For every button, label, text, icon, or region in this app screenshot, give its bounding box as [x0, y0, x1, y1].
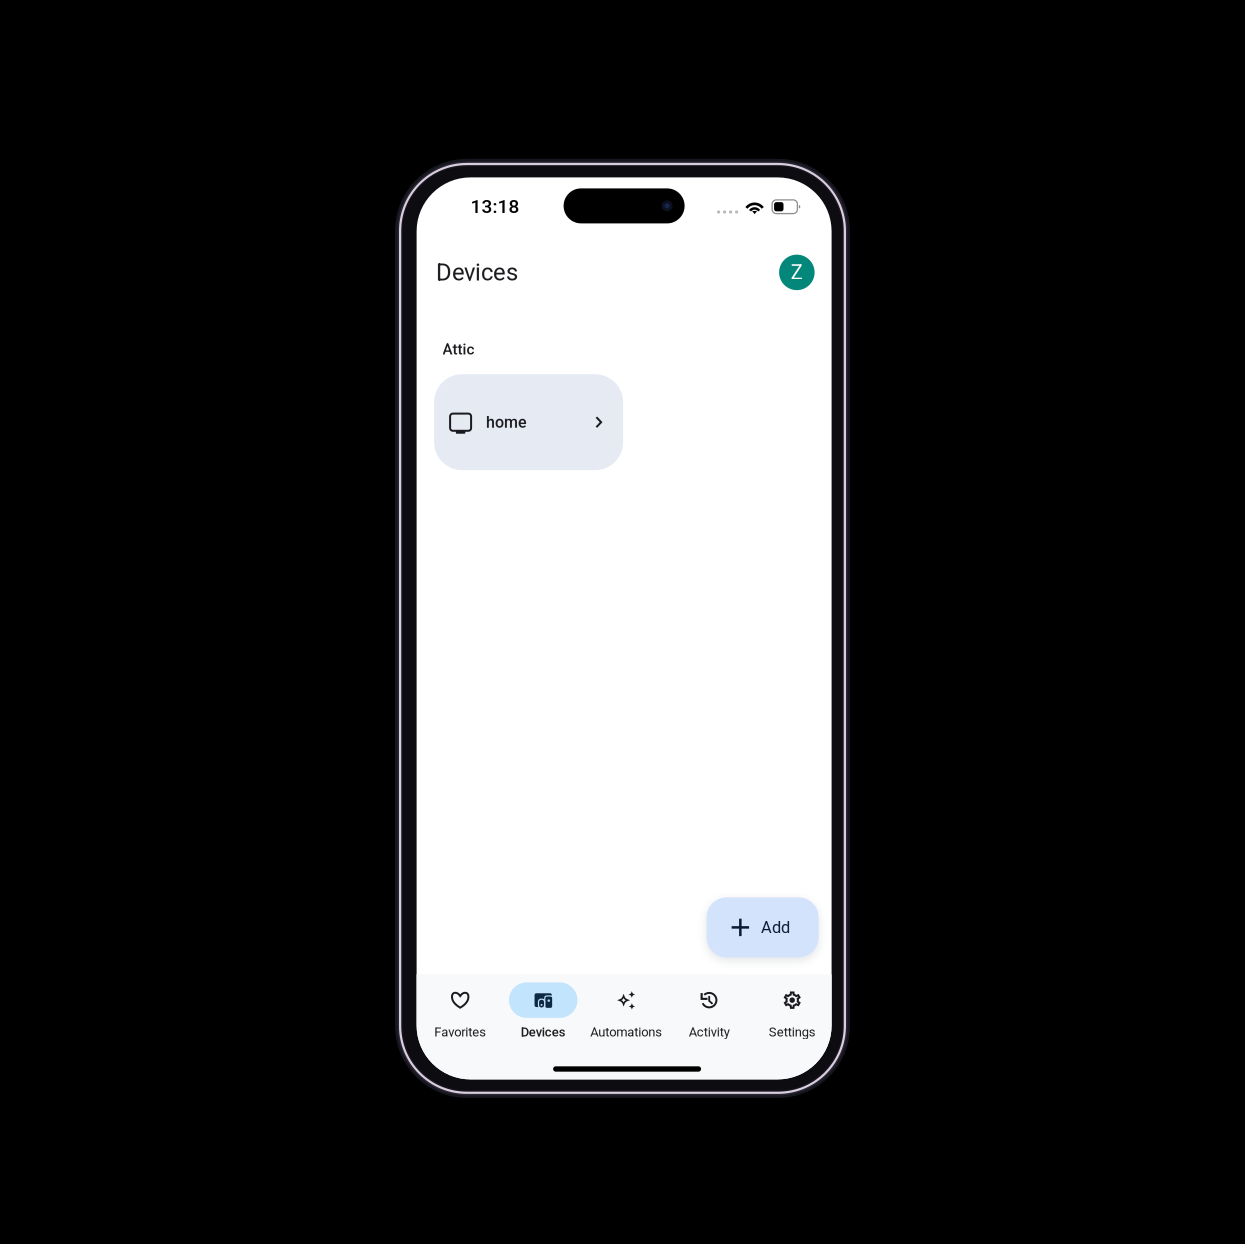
button[interactable]: Settings: [751, 982, 834, 1040]
staticText: Automations: [590, 1024, 662, 1040]
button[interactable]: Activity: [668, 982, 751, 1040]
staticText: 13:18: [471, 195, 520, 218]
staticText: home: [486, 413, 527, 432]
button[interactable]: Devices: [502, 982, 585, 1040]
button[interactable]: Account: [779, 255, 815, 290]
staticText: Devices: [436, 258, 518, 286]
staticText: Z: [791, 261, 803, 284]
staticText: Attic: [443, 340, 475, 358]
button[interactable]: home: [434, 374, 623, 470]
staticText: Devices: [521, 1024, 566, 1040]
button[interactable]: Add: [707, 897, 819, 957]
button[interactable]: Favorites: [419, 982, 502, 1040]
staticText: Add: [761, 918, 790, 937]
button[interactable]: Automations: [585, 982, 668, 1040]
staticText: Favorites: [434, 1024, 486, 1040]
staticText: Settings: [769, 1024, 816, 1040]
staticText: Activity: [689, 1024, 730, 1040]
